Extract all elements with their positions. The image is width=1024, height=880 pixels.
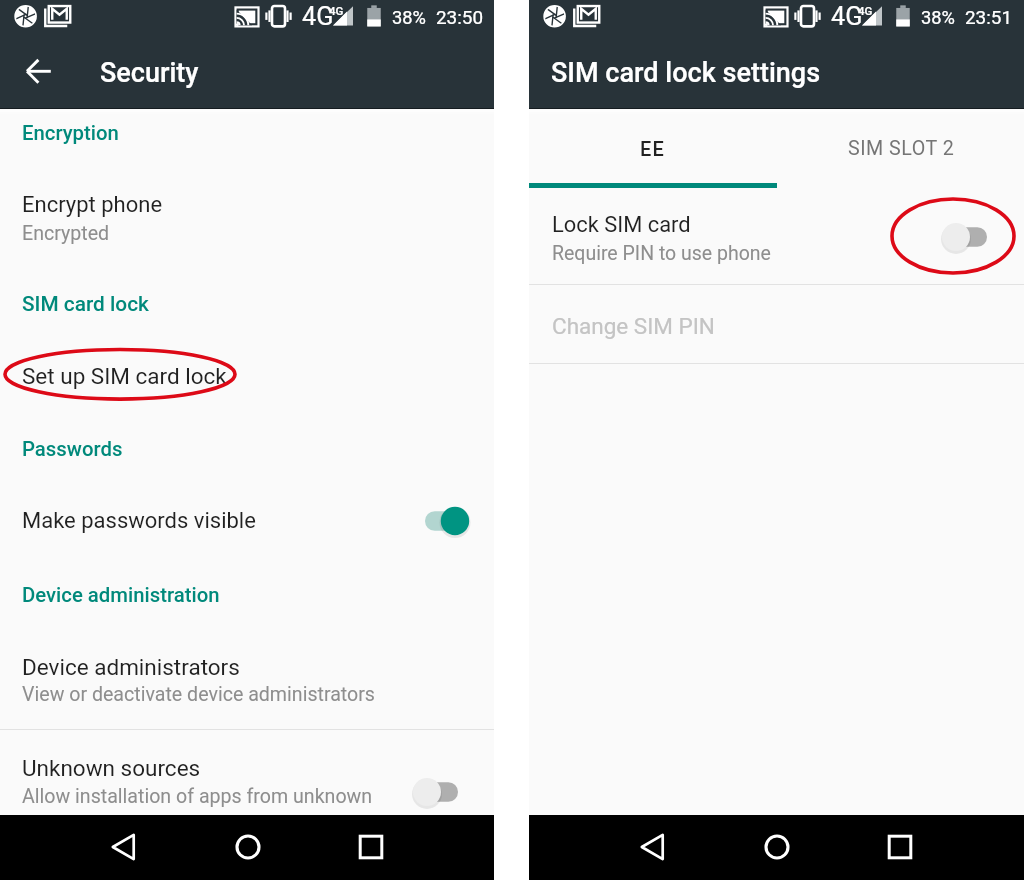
button[interactable]: Unknown sources xyxy=(0,730,494,815)
button[interactable]: Set up SIM card lock xyxy=(0,340,494,410)
staticText: 4G xyxy=(831,2,863,32)
staticText: Change SIM PIN xyxy=(552,313,715,339)
button[interactable]: Back xyxy=(621,815,685,880)
button[interactable]: Recent apps xyxy=(868,815,932,880)
staticText: Lock SIM card xyxy=(552,212,691,238)
staticText: Make passwords visible xyxy=(22,508,256,534)
button[interactable]: SIM SLOT 2 xyxy=(777,109,1024,188)
staticText: EE xyxy=(640,137,666,160)
staticText: SIM SLOT 2 xyxy=(848,137,955,160)
button[interactable]: EE xyxy=(529,109,777,188)
staticText: Passwords xyxy=(22,437,123,461)
staticText: Allow installation of apps from unknown xyxy=(22,785,373,808)
button[interactable]: On xyxy=(409,497,481,545)
button[interactable]: Off xyxy=(934,213,1006,261)
button[interactable]: Home xyxy=(216,815,280,880)
staticText: Require PIN to use phone xyxy=(552,242,771,265)
button[interactable]: Off xyxy=(405,768,477,816)
staticText: 4G xyxy=(858,4,873,17)
button[interactable]: Encrypt phone xyxy=(0,166,494,266)
staticText: Device administration xyxy=(22,583,220,607)
staticText: 38% xyxy=(921,7,955,28)
button[interactable]: Back xyxy=(92,815,156,880)
staticText: 38% xyxy=(392,7,426,28)
button[interactable]: Navigate up xyxy=(15,47,63,95)
staticText: SIM card lock settings xyxy=(551,57,821,89)
button[interactable]: Recent apps xyxy=(339,815,403,880)
staticText: 23:51 xyxy=(965,6,1013,28)
staticText: Encrypt phone xyxy=(22,192,163,218)
staticText: Encrypted xyxy=(22,222,110,245)
staticText: Unknown sources xyxy=(22,755,201,781)
staticText: Encryption xyxy=(22,121,119,145)
staticText: Set up SIM card lock xyxy=(22,363,227,389)
button[interactable]: Device administrators xyxy=(0,630,494,729)
button[interactable]: Make passwords visible xyxy=(0,488,494,554)
button[interactable]: Home xyxy=(745,815,809,880)
button[interactable]: Change SIM PIN xyxy=(529,285,1024,363)
staticText: Security xyxy=(100,57,199,89)
button[interactable]: Lock SIM card xyxy=(529,190,1024,284)
staticText: 23:50 xyxy=(436,6,484,28)
staticText: 4G xyxy=(329,4,344,17)
staticText: View or deactivate device administrators xyxy=(22,683,375,706)
staticText: Device administrators xyxy=(22,654,240,680)
staticText: SIM card lock xyxy=(22,292,149,316)
staticText: 4G xyxy=(302,2,334,32)
